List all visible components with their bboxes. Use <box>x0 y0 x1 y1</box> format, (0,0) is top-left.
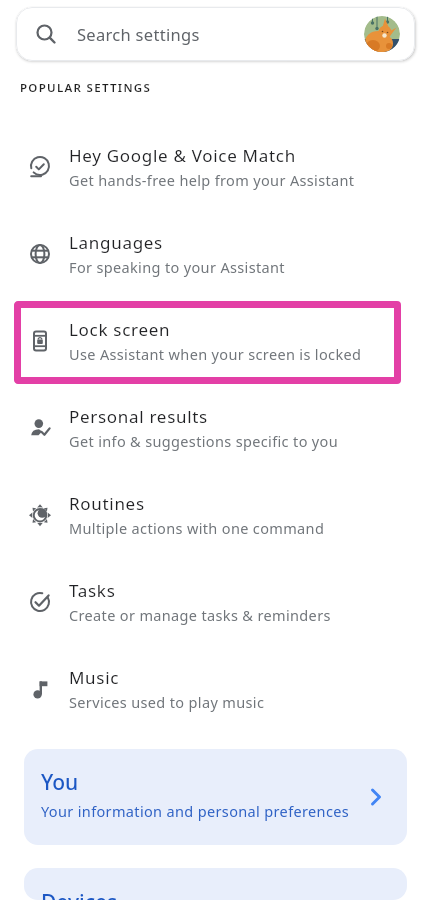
staticText: Devices <box>41 888 118 900</box>
staticText: Services used to play music <box>69 692 265 712</box>
staticText: Multiple actions with one command <box>69 518 325 538</box>
button[interactable]: Languages <box>0 210 431 297</box>
staticText: Lock screen <box>69 318 171 341</box>
button[interactable]: Personal results <box>0 384 431 471</box>
staticText: Get hands-free help from your Assistant <box>69 170 355 190</box>
staticText: Music <box>69 666 120 689</box>
button[interactable]: You <box>24 749 407 845</box>
staticText: Get info & suggestions specific to you <box>69 431 339 451</box>
staticText: Create or manage tasks & reminders <box>69 605 331 625</box>
staticText: Routines <box>69 492 145 515</box>
staticText: Use Assistant when your screen is locked <box>69 344 362 364</box>
button[interactable]: Lock screen <box>0 297 431 384</box>
staticText: For speaking to your Assistant <box>69 257 285 277</box>
button[interactable]: Tasks <box>0 558 431 645</box>
button[interactable]: Routines <box>0 471 431 558</box>
button[interactable]: Devices <box>24 868 407 900</box>
button[interactable]: Search settings <box>16 7 415 61</box>
staticText: Languages <box>69 231 163 254</box>
staticText: You <box>41 768 79 797</box>
staticText: Hey Google & Voice Match <box>69 144 296 167</box>
staticText: Your information and personal preference… <box>41 801 350 821</box>
staticText: POPULAR SETTINGS <box>20 80 152 96</box>
staticText: Personal results <box>69 405 208 428</box>
staticText: Search settings <box>77 23 200 45</box>
staticText: Tasks <box>69 579 116 602</box>
button[interactable]: Hey Google & Voice Match <box>0 123 431 210</box>
button[interactable]: Music <box>0 645 431 732</box>
